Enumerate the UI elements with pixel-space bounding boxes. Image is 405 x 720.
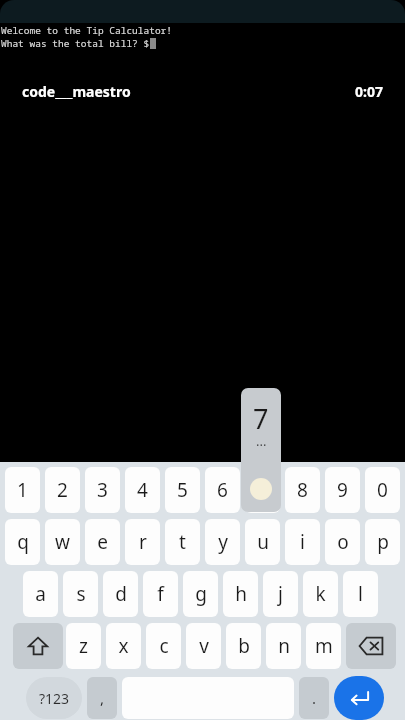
staticText: p [377,529,389,555]
button[interactable]: d [103,571,138,617]
staticText: 5 [177,477,188,503]
button[interactable]: f [143,571,178,617]
button[interactable]: q [5,519,40,565]
staticText: g [195,581,207,607]
button[interactable]: Enter [334,676,384,720]
staticText: b [238,633,250,659]
button[interactable]: w [45,519,80,565]
staticText: 7 [253,400,269,437]
staticText: y [218,529,228,555]
staticText: 4 [137,477,148,503]
button[interactable]: m [306,623,341,669]
button[interactable]: e [85,519,120,565]
button[interactable]: y [205,519,240,565]
staticText: h [235,581,247,607]
staticText: z [79,633,88,659]
button[interactable]: z [66,623,101,669]
button[interactable]: 9 [325,467,360,513]
staticText: 2 [57,477,68,503]
button[interactable]: Shift [13,623,63,669]
button[interactable]: r [125,519,160,565]
staticText: c [159,633,169,659]
staticText: Welcome to the Tip Calculator! [1,24,173,37]
staticText: d [115,581,127,607]
button[interactable]: Comma [87,677,117,719]
staticText: a [35,581,46,607]
button[interactable]: c [146,623,181,669]
staticText: 1 [17,477,28,503]
staticText: v [199,633,209,659]
button[interactable]: o [325,519,360,565]
button[interactable]: p [365,519,400,565]
staticText: 6 [217,477,228,503]
staticText: f [157,581,164,607]
button[interactable]: Period [299,677,329,719]
staticText: m [315,633,333,659]
staticText: s [76,581,86,607]
staticText: 3 [97,477,108,503]
staticText: 0:07 [355,82,383,101]
staticText: o [337,529,349,555]
button[interactable]: n [266,623,301,669]
staticText: u [257,529,269,555]
staticText: ... [256,432,267,450]
button[interactable]: u [245,519,280,565]
button[interactable]: i [285,519,320,565]
button[interactable]: 1 [5,467,40,513]
button[interactable]: 5 [165,467,200,513]
staticText: 8 [297,477,308,503]
button[interactable]: 3 [85,467,120,513]
staticText: w [55,529,70,555]
button[interactable]: j [263,571,298,617]
button[interactable]: a [23,571,58,617]
staticText: What was the total bill? $ [1,37,150,50]
button[interactable]: x [106,623,141,669]
staticText: q [17,529,29,555]
staticText: e [97,529,108,555]
staticText: l [358,581,363,607]
staticText: 9 [337,477,348,503]
button[interactable]: h [223,571,258,617]
staticText: 7 [257,477,268,503]
button[interactable]: 2 [45,467,80,513]
button[interactable]: 8 [285,467,320,513]
button[interactable]: 6 [205,467,240,513]
staticText: 0 [377,477,388,503]
button[interactable]: l [343,571,378,617]
button[interactable]: 0 [365,467,400,513]
staticText: . [312,688,317,708]
button[interactable]: b [226,623,261,669]
button[interactable]: t [165,519,200,565]
button[interactable]: 7 [245,467,280,513]
button[interactable]: v [186,623,221,669]
button[interactable]: Backspace [346,623,396,669]
staticText: code___maestro [22,82,131,101]
staticText: i [300,529,305,555]
staticText: t [179,529,186,555]
button[interactable]: s [63,571,98,617]
staticText: n [278,633,290,659]
staticText: k [315,581,326,607]
button[interactable]: 4 [125,467,160,513]
staticText: j [278,581,283,607]
button[interactable]: k [303,571,338,617]
staticText: r [139,529,147,555]
staticText: , [100,688,105,708]
button[interactable]: g [183,571,218,617]
button[interactable]: ?123 [26,677,82,719]
staticText: x [118,633,129,659]
staticText: ?123 [39,689,70,708]
